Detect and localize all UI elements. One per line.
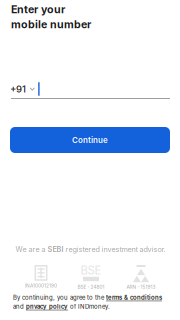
staticText: Enter your bbox=[11, 3, 65, 16]
staticText: We are a SEBI registered investment advi… bbox=[15, 245, 165, 254]
staticText: ARN - 151913 bbox=[126, 284, 155, 290]
staticText: BSE bbox=[80, 264, 101, 277]
staticText: +91 bbox=[10, 83, 26, 95]
staticText: INA100012190 bbox=[25, 283, 57, 289]
staticText: By continuing, you agree to the terms & … bbox=[13, 294, 162, 310]
staticText: mobile number bbox=[11, 18, 91, 31]
button[interactable]: +91 bbox=[10, 81, 169, 97]
staticText: BSE - 24801 bbox=[77, 284, 104, 290]
button[interactable]: Continue bbox=[10, 127, 170, 153]
staticText: Continue bbox=[72, 135, 108, 145]
